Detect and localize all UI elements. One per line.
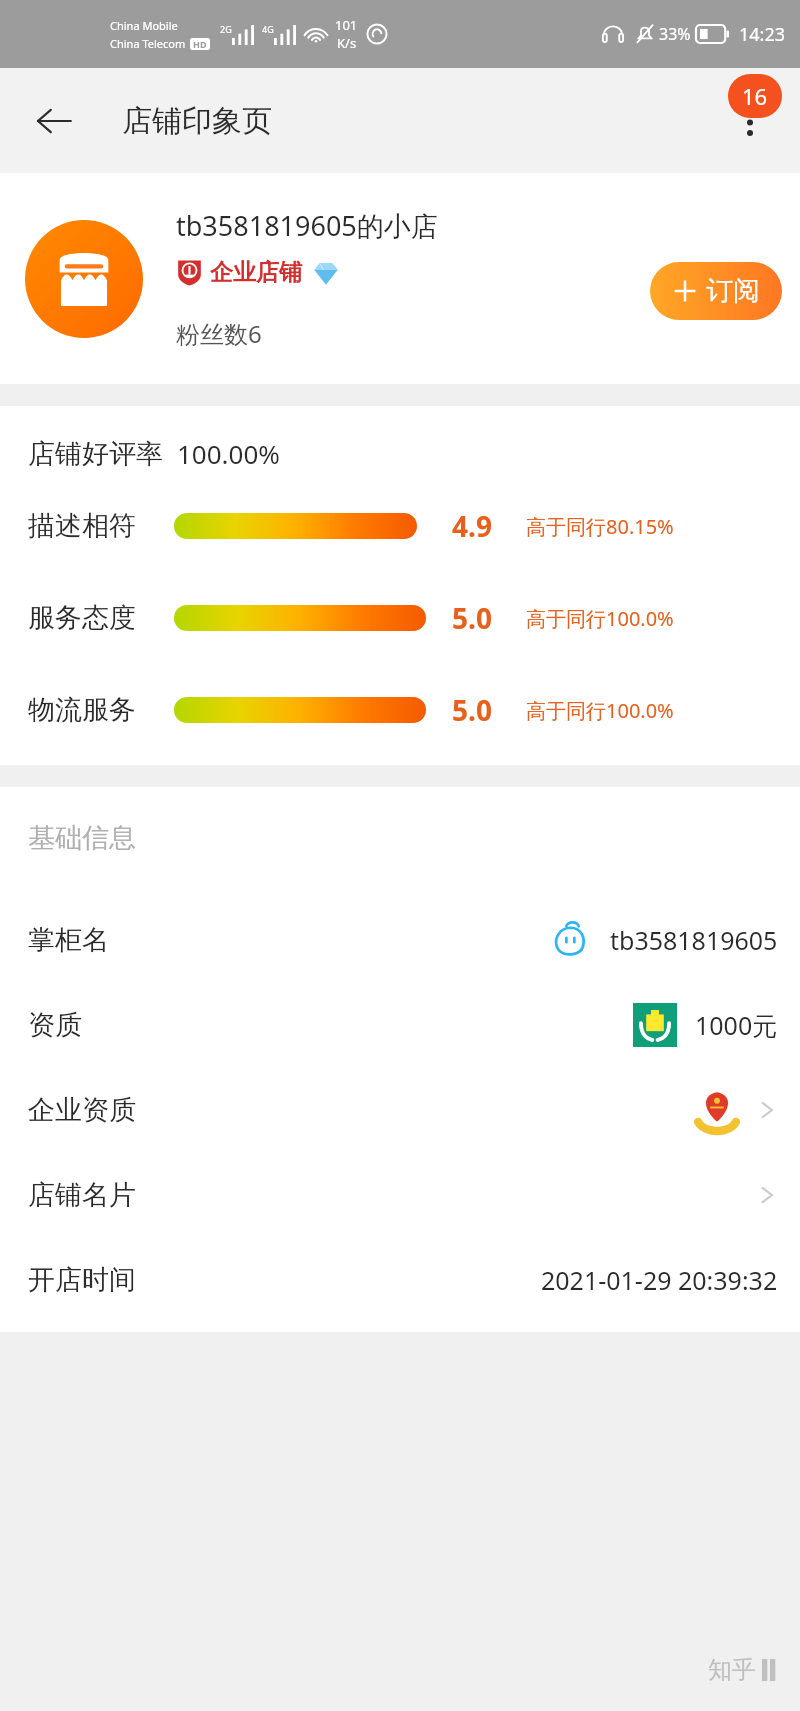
staticText: 高于同行100.0%	[526, 605, 674, 632]
staticText: 描述相符	[28, 509, 160, 543]
staticText: tb3581819605的小店	[176, 207, 438, 244]
staticText: 1000元	[695, 1008, 778, 1042]
staticText: 2G	[220, 23, 232, 35]
button[interactable]: Back	[26, 93, 82, 149]
staticText: 101	[335, 16, 358, 34]
staticText: 16	[742, 81, 768, 111]
button[interactable]: 开店时间	[0, 1237, 800, 1322]
staticText: 企业资质	[28, 1093, 136, 1127]
staticText: 服务态度	[28, 601, 160, 635]
staticText: 掌柜名	[28, 923, 109, 957]
staticText: 100.00%	[177, 436, 280, 471]
staticText: 4G	[262, 23, 274, 35]
button[interactable]: Shop avatar	[25, 220, 143, 338]
staticText: 14:23	[739, 22, 786, 47]
button[interactable]: 企业资质	[0, 1067, 800, 1152]
staticText: 店铺好评率	[28, 437, 163, 471]
button[interactable]: 掌柜名	[0, 897, 800, 982]
staticText: 高于同行80.15%	[526, 513, 674, 540]
staticText: China Telecom	[110, 36, 186, 51]
staticText: 粉丝数6	[176, 317, 262, 350]
staticText: 资质	[28, 1008, 82, 1042]
button[interactable]: 物流服务	[0, 691, 800, 729]
button[interactable]: 服务态度	[0, 599, 800, 637]
staticText: 开店时间	[28, 1263, 136, 1297]
staticText: 企业店铺	[210, 258, 302, 287]
staticText: tb3581819605	[610, 923, 778, 957]
button[interactable]: 订阅	[650, 262, 782, 320]
staticText: K/s	[337, 34, 357, 52]
staticText: 5.0	[452, 599, 508, 637]
staticText: 店铺印象页	[122, 102, 272, 140]
button[interactable]: 店铺名片	[0, 1152, 800, 1237]
staticText: 店铺名片	[28, 1178, 136, 1212]
staticText: 基础信息	[28, 821, 136, 855]
staticText: HD	[193, 38, 207, 50]
staticText: 4.9	[452, 507, 508, 545]
staticText: 高于同行100.0%	[526, 697, 674, 724]
staticText: 5.0	[452, 691, 508, 729]
staticText: 33%	[659, 23, 691, 45]
button[interactable]: 描述相符	[0, 507, 800, 545]
staticText: China Mobile	[110, 18, 178, 33]
staticText: 订阅	[706, 274, 760, 308]
staticText: 知乎	[708, 1655, 756, 1685]
staticText: 2021-01-29 20:39:32	[541, 1263, 778, 1297]
button[interactable]: More options	[722, 93, 778, 149]
staticText: 物流服务	[28, 693, 160, 727]
button[interactable]: 资质	[0, 982, 800, 1067]
